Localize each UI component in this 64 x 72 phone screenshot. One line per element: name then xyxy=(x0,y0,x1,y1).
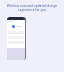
staticText: Wireless new and updated design experien… xyxy=(2,4,62,11)
